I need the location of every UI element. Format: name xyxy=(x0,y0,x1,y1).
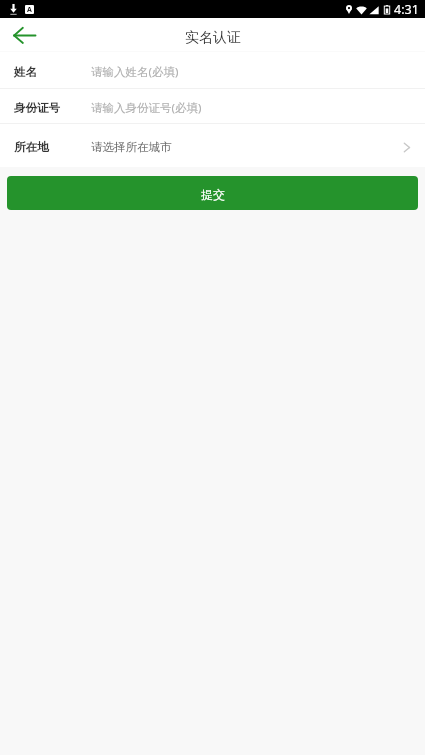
button[interactable]: 提交 xyxy=(7,176,418,210)
button[interactable]: Back xyxy=(9,20,39,50)
staticText: 实名认证 xyxy=(185,29,241,47)
button[interactable]: 姓名 xyxy=(0,52,425,88)
staticText: 4:31 xyxy=(394,1,419,18)
staticText: 请输入姓名(必填) xyxy=(91,64,179,80)
staticText: 请选择所在城市 xyxy=(91,140,172,154)
staticText: 姓名 xyxy=(14,65,37,79)
staticText: A xyxy=(27,5,32,13)
button[interactable]: 所在地 xyxy=(0,124,425,167)
button[interactable]: 身份证号 xyxy=(0,89,425,123)
staticText: 所在地 xyxy=(14,140,49,154)
staticText: 请输入身份证号(必填) xyxy=(91,100,202,116)
staticText: 提交 xyxy=(201,187,225,202)
staticText: 身份证号 xyxy=(14,101,60,115)
